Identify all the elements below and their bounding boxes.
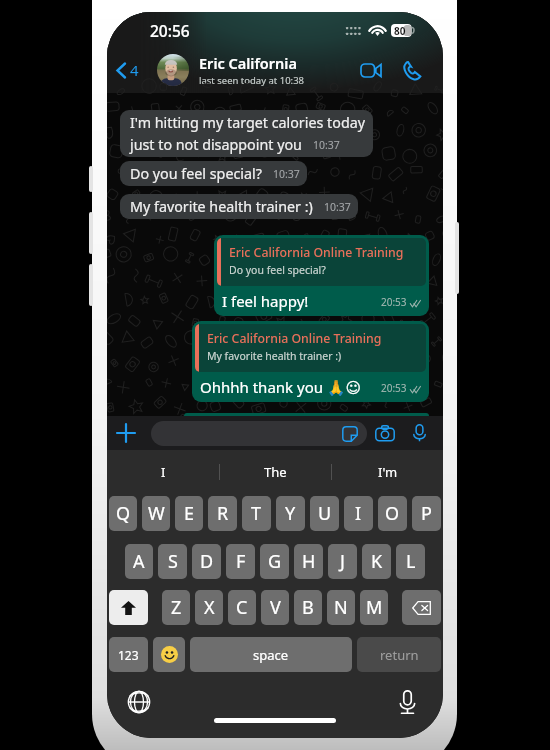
staticText: R [217,501,229,526]
staticText: Do you feel special? [130,164,262,183]
button[interactable]: R [208,496,237,531]
staticText: E [184,501,195,526]
button[interactable]: Voice message [406,420,432,446]
button[interactable]: Y [276,496,305,531]
button[interactable]: I [107,450,219,493]
staticText: H [302,549,316,574]
staticText: My favorite health trainer :) [207,349,342,363]
button[interactable]: G [260,544,289,579]
staticText: 20:53 [381,295,407,309]
button[interactable]: E [175,496,203,531]
button[interactable]: return [357,637,441,672]
button[interactable]: C [228,590,256,625]
staticText: 80 [394,24,406,37]
button[interactable]: Camera [372,420,398,446]
button[interactable]: Emoji [153,637,185,672]
staticText: My favorite health trainer :) [130,197,313,216]
staticText: Eric California Online Training [229,244,404,261]
button[interactable]: P [412,496,441,531]
staticText: Do you feel special? [229,263,326,277]
button[interactable]: H [294,544,323,579]
button[interactable]: K [362,544,391,579]
staticText: 10:37 [313,138,340,152]
button[interactable]: O [378,496,407,531]
button[interactable]: B [294,590,322,625]
button[interactable]: Z [162,590,190,625]
button[interactable]: M [360,590,388,625]
staticText: Eric California Online… [199,53,352,73]
button[interactable]: U [310,496,339,531]
button[interactable]: Do you feel special? [120,161,307,186]
button[interactable]: Eric California Online Training [214,235,429,316]
button[interactable]: J [328,544,357,579]
button[interactable]: Voice call [397,55,427,85]
staticText: P [421,501,432,526]
staticText: 10:37 [324,200,351,214]
button[interactable]: T [242,496,271,531]
button[interactable]: Dictation [393,688,421,716]
button[interactable]: I'm hitting my target calories today [120,110,373,157]
staticText: A [133,549,145,574]
staticText: W [148,501,165,526]
staticText: Q [116,501,131,526]
staticText: N [334,595,348,620]
button[interactable]: N [327,590,355,625]
staticText: Ohhhh thank you 🙏☺ [200,377,362,397]
staticText: 20:56 [150,20,190,41]
button[interactable]: Change keyboard language [125,688,153,716]
staticText: The [264,463,287,481]
button[interactable]: V [261,590,289,625]
button[interactable]: space [190,637,352,672]
button[interactable]: F [226,544,255,579]
staticText: D [200,549,214,574]
button[interactable]: Video call [356,55,386,85]
button[interactable]: 123 [109,637,148,672]
staticText: C [236,595,248,620]
button[interactable]: A [125,544,153,579]
button[interactable]: I'm [332,450,443,493]
staticText: space [253,646,289,664]
staticText: just to not disappoint you [130,135,302,154]
staticText: T [251,501,262,526]
button[interactable]: My favorite health trainer :) [120,194,358,219]
button[interactable]: W [142,496,170,531]
staticText: X [204,595,215,620]
button[interactable]: S [158,544,187,579]
staticText: I [161,463,166,481]
button[interactable]: Shift [109,590,148,625]
button[interactable]: D [192,544,221,579]
staticText: I'm [378,463,398,481]
staticText: I [355,501,362,526]
staticText: Z [171,595,182,620]
button[interactable]: Q [109,496,137,531]
staticText: J [340,549,345,574]
button[interactable]: X [195,590,223,625]
staticText: 123 [118,647,139,663]
staticText: B [302,595,314,620]
staticText: M [366,595,383,620]
staticText: I feel happy! [222,291,309,311]
button[interactable]: The [220,450,331,493]
button[interactable] [151,421,367,446]
staticText: return [380,646,419,664]
staticText: 4 [130,60,139,80]
button[interactable]: Attach [112,419,140,447]
staticText: S [168,549,178,574]
staticText: F [236,549,246,574]
staticText: last seen today at 10:38 [199,74,305,87]
staticText: O [385,501,400,526]
staticText: G [268,549,282,574]
staticText: L [406,549,416,574]
button[interactable]: Eric California Online Training [192,321,429,402]
staticText: K [371,549,383,574]
button[interactable]: L [396,544,425,579]
staticText: 10:37 [273,167,300,181]
staticText: 20:53 [381,381,407,395]
staticText: Eric California Online Training [207,330,382,347]
staticText: U [318,501,332,526]
staticText: V [270,595,281,620]
button[interactable]: Backspace [402,590,441,625]
button[interactable]: I [344,496,373,531]
button[interactable]: 4 [112,54,143,86]
staticText: I'm hitting my target calories today [130,113,366,132]
